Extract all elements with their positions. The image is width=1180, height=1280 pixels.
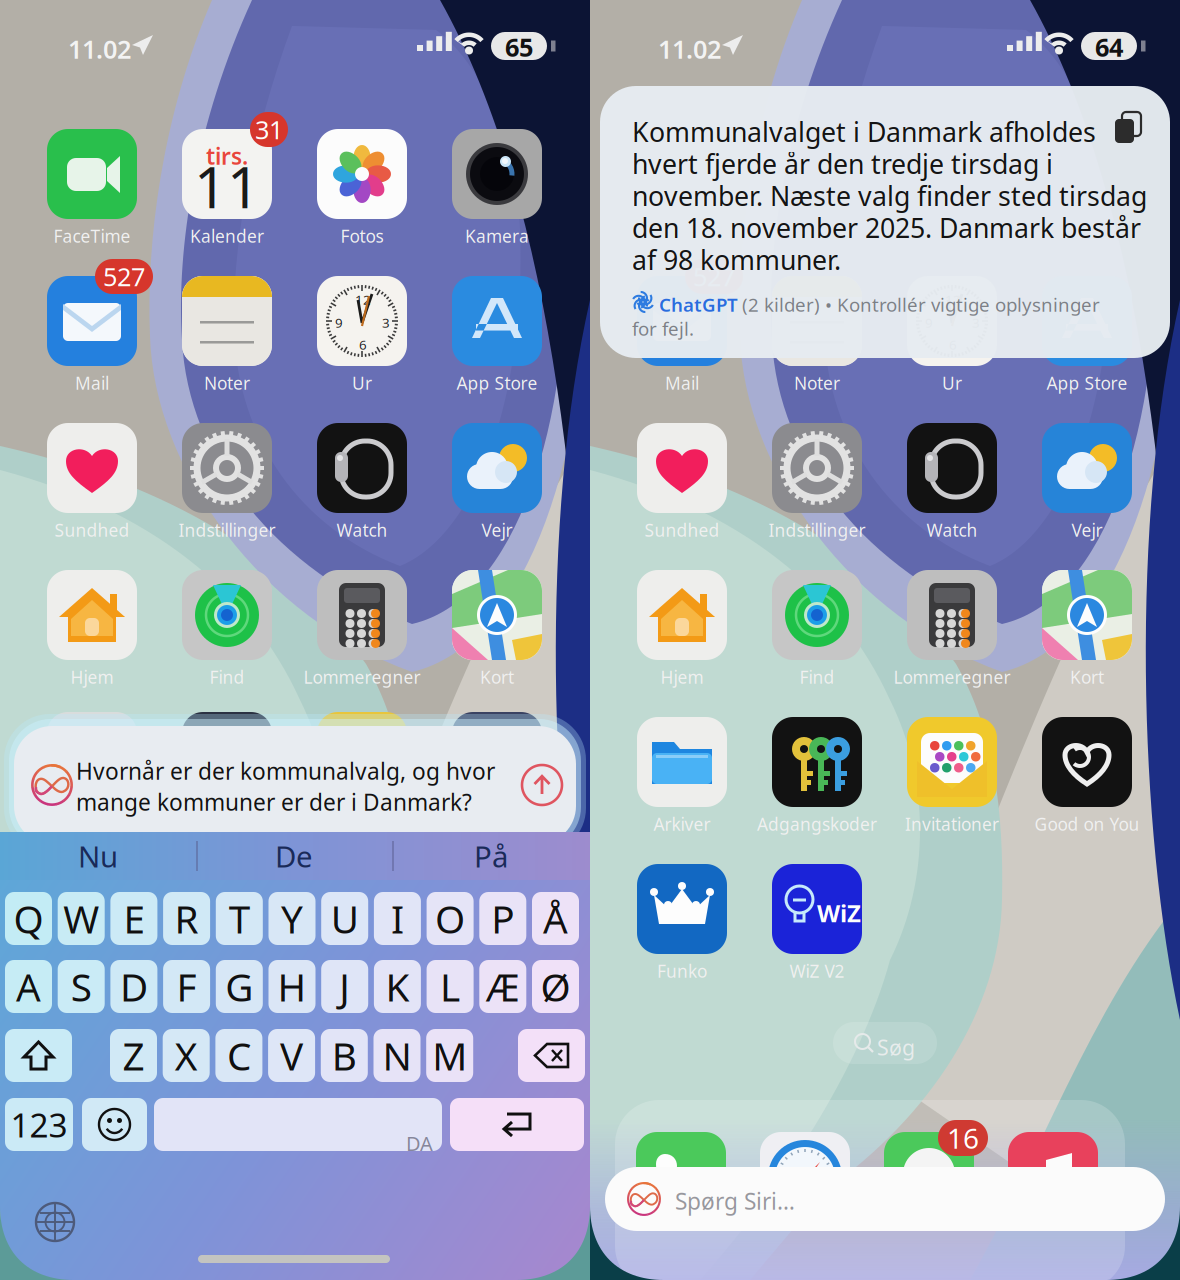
button[interactable]: O — [427, 892, 474, 945]
staticText: H — [277, 961, 306, 1012]
button[interactable]: G — [216, 960, 263, 1013]
button[interactable]: V — [268, 1029, 315, 1082]
button[interactable]: På — [392, 832, 590, 880]
button[interactable]: L — [427, 960, 474, 1013]
button[interactable]: Q — [5, 892, 52, 945]
button[interactable]: Hvornår er der kommunalvalg, og hvor — [14, 726, 576, 844]
button[interactable]: Safari — [760, 1132, 850, 1222]
button[interactable]: M — [426, 1029, 473, 1082]
staticText: 123 — [10, 1102, 67, 1147]
button[interactable]: W — [58, 892, 105, 945]
button[interactable]: J — [321, 960, 368, 1013]
button[interactable]: Telefon — [636, 1132, 726, 1222]
staticText: 527 — [693, 260, 735, 293]
button[interactable]: Lommeregner — [887, 570, 1017, 694]
button[interactable]: Beskeder — [884, 1132, 974, 1222]
staticText: 3 — [382, 314, 390, 331]
staticText: Noter — [794, 371, 840, 394]
button[interactable]: D — [110, 960, 157, 1013]
button[interactable]: Watch — [297, 423, 427, 547]
button[interactable]: Lommeregner — [297, 570, 427, 694]
button[interactable]: H — [268, 960, 315, 1013]
button[interactable]: 527 — [617, 276, 747, 400]
staticText: Søg — [877, 1033, 915, 1061]
button[interactable]: Æ — [479, 960, 526, 1013]
button[interactable]: A — [5, 960, 52, 1013]
button[interactable]: Sundhed — [27, 423, 157, 547]
button[interactable]: C — [215, 1029, 262, 1082]
button[interactable]: E — [110, 892, 157, 945]
button[interactable]: I — [374, 892, 421, 945]
button[interactable]: Vejr — [432, 423, 562, 547]
button[interactable]: Kort — [1022, 570, 1152, 694]
staticText: 12 — [355, 291, 371, 308]
button[interactable]: Adgangskoder — [752, 717, 882, 841]
button[interactable]: De — [196, 832, 392, 880]
button[interactable]: Invitationer — [887, 717, 1017, 841]
button[interactable]: Arkiver — [617, 717, 747, 841]
button[interactable]: N — [373, 1029, 420, 1082]
button[interactable]: tirs. — [162, 129, 292, 253]
button[interactable]: Søg — [833, 1022, 937, 1064]
button[interactable]: Find — [752, 570, 882, 694]
staticText: Arkiver — [653, 812, 710, 835]
button[interactable]: T — [216, 892, 263, 945]
button[interactable]: Z — [110, 1029, 157, 1082]
button[interactable]: Kopiér — [1112, 112, 1146, 146]
button[interactable]: Indstillinger — [162, 423, 292, 547]
button[interactable]: 12 — [887, 276, 1017, 400]
button[interactable]: Hjem — [617, 570, 747, 694]
staticText: App Store — [1046, 371, 1127, 394]
button[interactable]: FaceTime — [27, 129, 157, 253]
button[interactable]: R — [163, 892, 210, 945]
button[interactable]: Indstillinger — [752, 423, 882, 547]
staticText: Ø — [540, 961, 570, 1012]
button[interactable]: Hjem — [27, 570, 157, 694]
button[interactable]: Fotos — [297, 129, 427, 253]
button[interactable]: K — [374, 960, 421, 1013]
staticText: (2 kilder) • Kontrollér vigtige oplysnin… — [742, 292, 1100, 317]
staticText: tirs. — [206, 141, 248, 171]
button[interactable]: Sundhed — [617, 423, 747, 547]
button[interactable]: Shift — [5, 1029, 72, 1082]
button[interactable]: Kort — [432, 570, 562, 694]
button[interactable]: F — [163, 960, 210, 1013]
staticText: Indstillinger — [178, 518, 275, 541]
button[interactable]: Watch — [887, 423, 1017, 547]
button[interactable]: P — [479, 892, 526, 945]
button[interactable]: Noter — [752, 276, 882, 400]
button[interactable]: 527 — [27, 276, 157, 400]
button[interactable]: Spørg Siri… — [605, 1167, 1165, 1231]
button[interactable]: App Store — [1022, 276, 1152, 400]
button[interactable]: B — [321, 1029, 368, 1082]
button[interactable]: Y — [268, 892, 315, 945]
button[interactable]: Backspace — [518, 1029, 585, 1082]
staticText: 11.02 — [658, 32, 721, 66]
button[interactable]: Funko — [617, 864, 747, 988]
button[interactable]: Ø — [532, 960, 579, 1013]
staticText: F — [177, 961, 197, 1012]
button[interactable]: WiZ — [752, 864, 882, 988]
button[interactable]: Good on You — [1022, 717, 1152, 841]
button[interactable]: U — [321, 892, 368, 945]
button[interactable]: Å — [532, 892, 579, 945]
button[interactable]: X — [163, 1029, 210, 1082]
button[interactable]: Kamera — [432, 129, 562, 253]
button[interactable]: Emoji — [82, 1098, 147, 1151]
staticText: K — [385, 961, 409, 1012]
button[interactable]: Return — [450, 1098, 584, 1151]
staticText: WiZ V2 — [789, 959, 844, 982]
button[interactable]: Find — [162, 570, 292, 694]
button[interactable]: Nu — [0, 832, 196, 880]
button[interactable]: S — [58, 960, 105, 1013]
button[interactable]: 12 — [297, 276, 427, 400]
button[interactable]: Noter — [162, 276, 292, 400]
staticText: Spørg Siri… — [675, 1186, 795, 1216]
button[interactable]: Space — [154, 1098, 442, 1151]
button[interactable]: App Store — [432, 276, 562, 400]
button[interactable]: Next keyboard — [33, 1200, 77, 1244]
button[interactable]: Musik — [1008, 1132, 1098, 1222]
button[interactable]: 123 — [5, 1098, 73, 1151]
button[interactable]: Vejr — [1022, 423, 1152, 547]
